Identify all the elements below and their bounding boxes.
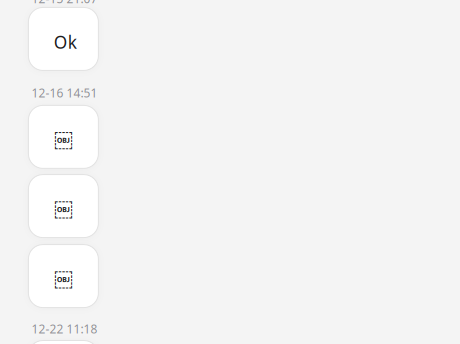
staticText: ￼ <box>54 196 73 220</box>
staticText: Ok <box>54 30 77 53</box>
button[interactable]: Ok <box>28 7 98 70</box>
button[interactable]: ￼ <box>28 105 98 168</box>
staticText: 12-16 14:51 <box>31 85 97 101</box>
button[interactable]: ￼ <box>28 340 98 344</box>
staticText: 12-15 21:07 <box>31 0 97 7</box>
button[interactable]: ￼ <box>28 245 98 308</box>
staticText: ￼ <box>54 266 73 290</box>
staticText: 12-22 11:18 <box>31 321 97 337</box>
button[interactable]: ￼ <box>28 175 98 238</box>
staticText: ￼ <box>54 126 73 151</box>
